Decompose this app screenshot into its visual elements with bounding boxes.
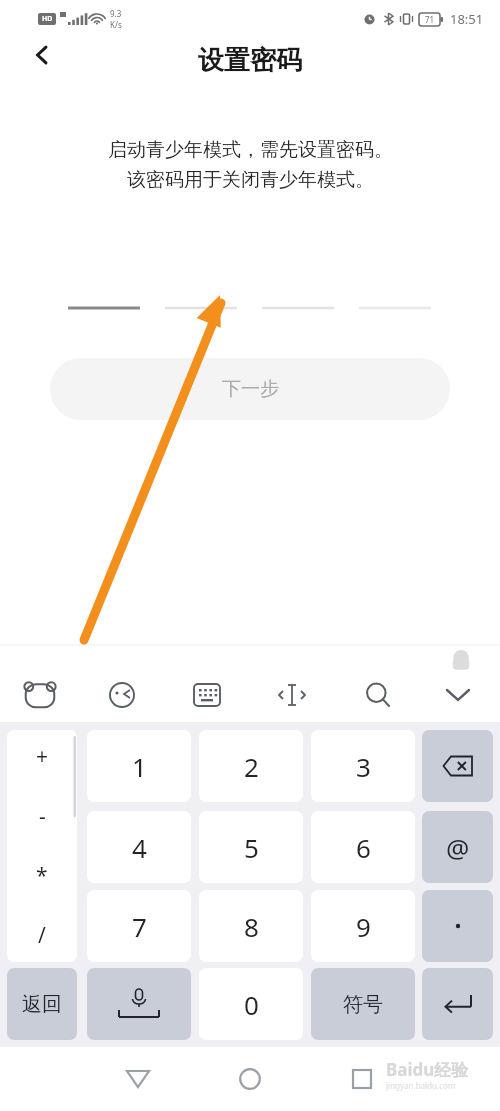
staticText: 1	[132, 749, 147, 784]
button[interactable]: 下一步	[50, 358, 450, 420]
button[interactable]: 0	[199, 968, 303, 1040]
button[interactable]: 删除	[422, 730, 493, 802]
button[interactable]: 2	[199, 730, 303, 802]
button[interactable]: 3	[311, 730, 415, 802]
button[interactable]: 最近任务	[340, 1057, 384, 1101]
staticText: 设置密码	[198, 44, 302, 77]
staticText: 8	[244, 909, 259, 944]
button[interactable]: 1	[87, 730, 191, 802]
staticText: 4	[132, 830, 147, 865]
button[interactable]: 返回	[18, 31, 66, 79]
button[interactable]: +	[7, 730, 77, 962]
button[interactable]: 光标	[268, 671, 316, 719]
staticText: 9	[356, 909, 371, 944]
button[interactable]: 空格	[87, 968, 191, 1040]
button[interactable]: 4	[87, 811, 191, 883]
staticText: 0	[244, 987, 259, 1022]
staticText: HD	[42, 14, 53, 24]
staticText: /	[38, 921, 46, 950]
staticText: @	[446, 830, 470, 865]
staticText: 该密码用于关闭青少年模式。	[127, 168, 374, 192]
staticText: 下一步	[222, 377, 279, 401]
staticText: -	[39, 802, 46, 831]
button[interactable]: 5	[199, 811, 303, 883]
button[interactable]: 9	[311, 890, 415, 962]
staticText: 符号	[343, 992, 383, 1017]
staticText: *	[36, 861, 48, 890]
button[interactable]: 输入法	[16, 671, 64, 719]
staticText: 18:51	[450, 10, 484, 28]
button[interactable]: 表情	[98, 671, 146, 719]
staticText: 3	[356, 749, 371, 784]
button[interactable]: 主页	[228, 1057, 272, 1101]
staticText: 6	[356, 830, 371, 865]
button[interactable]: 7	[87, 890, 191, 962]
button[interactable]: 符号	[311, 968, 415, 1040]
button[interactable]: 键盘	[183, 671, 231, 719]
staticText: 7	[132, 909, 147, 944]
staticText: K/s	[110, 19, 122, 30]
staticText: 2	[244, 749, 259, 784]
staticText: 9.3	[110, 8, 122, 19]
staticText: Baidu经验	[386, 1058, 469, 1081]
button[interactable]: 返回	[116, 1057, 160, 1101]
button[interactable]: 句点	[422, 890, 493, 962]
button[interactable]: 回车	[422, 968, 493, 1040]
staticText: 返回	[22, 992, 62, 1017]
button[interactable]: 搜索	[354, 671, 402, 719]
button[interactable]: 6	[311, 811, 415, 883]
button[interactable]: 8	[199, 890, 303, 962]
staticText: +	[36, 742, 49, 771]
staticText: 71	[425, 14, 435, 25]
button[interactable]: 收起键盘	[434, 671, 482, 719]
staticText: 5	[244, 830, 259, 865]
staticText: 启动青少年模式，需先设置密码。	[108, 138, 393, 162]
button[interactable]: 返回	[7, 968, 77, 1040]
staticText: jingyan.baidu.com	[386, 1080, 456, 1091]
button[interactable]: @	[422, 811, 493, 883]
